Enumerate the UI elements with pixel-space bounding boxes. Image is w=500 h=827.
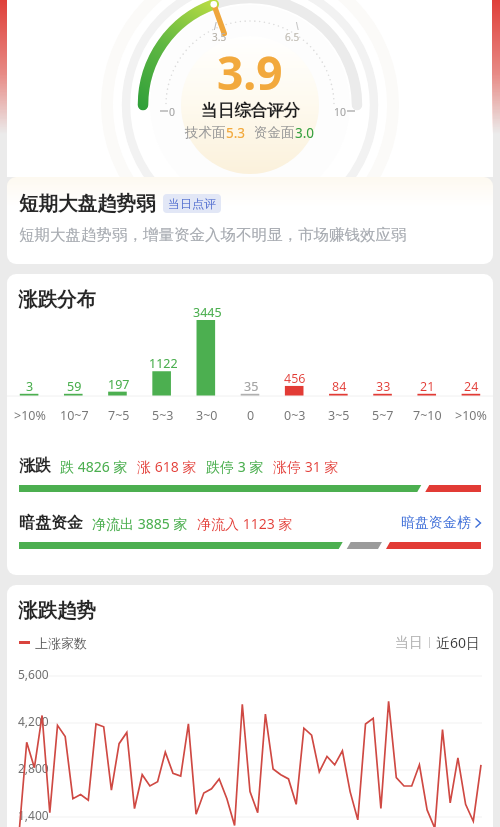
staticText: 暗盘资金 <box>19 513 83 533</box>
staticText: 7~10 <box>413 407 442 424</box>
staticText: 当日综合评分 <box>201 100 300 121</box>
staticText: 10 <box>334 105 347 119</box>
staticText: 跌停 3 家 <box>206 457 264 476</box>
staticText: 当日 <box>395 634 423 652</box>
button[interactable]: 当日 <box>395 634 423 652</box>
staticText: 59 <box>67 378 82 395</box>
staticText: 近60日 <box>436 633 481 652</box>
staticText: 10~7 <box>60 407 89 424</box>
staticText: >10% <box>455 407 487 424</box>
staticText: 5,600 <box>18 666 49 682</box>
staticText: 涨停 31 家 <box>273 457 339 476</box>
staticText: 上涨家数 <box>35 635 87 651</box>
staticText: 456 <box>284 370 306 387</box>
staticText: 3.9 <box>217 41 283 104</box>
staticText: 0~3 <box>284 407 306 424</box>
staticText: 当日点评 <box>168 196 216 211</box>
staticText: 短期大盘趋势弱，增量资金入场不明显，市场赚钱效应弱 <box>19 225 407 245</box>
staticText: 技术面 <box>185 124 226 141</box>
staticText: 净流出 3885 家 <box>92 514 188 533</box>
staticText: 197 <box>108 376 130 393</box>
staticText: 暗盘资金榜 <box>401 514 471 532</box>
staticText: 21 <box>420 378 435 395</box>
button[interactable]: 近60日 <box>436 633 481 652</box>
staticText: 净流入 1123 家 <box>197 514 293 533</box>
staticText: 6.5 <box>285 30 300 44</box>
staticText: 1,400 <box>18 807 49 823</box>
button[interactable]: 暗盘资金榜 <box>401 514 481 532</box>
staticText: 5~3 <box>152 407 174 424</box>
staticText: 涨跌分布 <box>18 287 96 312</box>
staticText: 涨 618 家 <box>137 457 197 476</box>
button[interactable]: 短期大盘趋势弱 <box>7 177 493 264</box>
staticText: 5~7 <box>372 407 394 424</box>
staticText: 0 <box>247 407 255 424</box>
staticText: 涨跌趋势 <box>18 598 96 623</box>
staticText: 24 <box>464 378 479 395</box>
staticText: 3~5 <box>328 407 350 424</box>
staticText: 2,800 <box>18 760 49 776</box>
staticText: 3~0 <box>196 407 218 424</box>
staticText: 0 <box>169 105 176 119</box>
staticText: 35 <box>244 378 259 395</box>
staticText: 4,200 <box>18 713 49 729</box>
staticText: 5.3 <box>226 124 246 142</box>
staticText: 短期大盘趋势弱 <box>19 191 156 216</box>
staticText: 资金面 <box>254 124 295 141</box>
staticText: 跌 4826 家 <box>60 457 128 476</box>
staticText: 3 <box>26 378 34 395</box>
staticText: 3445 <box>193 304 222 321</box>
staticText: 84 <box>332 378 347 395</box>
staticText: >10% <box>14 407 46 424</box>
staticText: 3.5 <box>212 30 227 44</box>
staticText: 1122 <box>149 355 178 372</box>
staticText: 3.0 <box>295 124 315 142</box>
staticText: 涨跌 <box>19 456 51 476</box>
staticText: 7~5 <box>108 407 130 424</box>
staticText: 33 <box>376 378 391 395</box>
